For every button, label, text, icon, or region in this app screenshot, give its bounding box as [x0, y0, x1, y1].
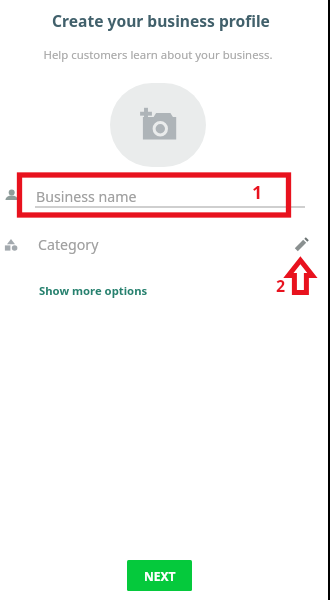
button[interactable]: NEXT: [127, 560, 192, 591]
staticText: 2: [276, 275, 286, 297]
button[interactable]: Add business photo: [110, 83, 206, 167]
staticText: NEXT: [144, 568, 176, 584]
staticText: Create your business profile: [52, 10, 270, 31]
button[interactable]: Edit: [292, 234, 312, 254]
staticText: Category: [38, 235, 99, 254]
staticText: Show more options: [39, 283, 148, 298]
button[interactable]: Show more options: [39, 283, 148, 298]
staticText: Business name: [36, 187, 137, 206]
staticText: Help customers learn about your business…: [43, 47, 273, 63]
button[interactable]: Business name: [0, 183, 330, 211]
button[interactable]: Category: [0, 231, 330, 257]
staticText: 1: [252, 180, 263, 205]
